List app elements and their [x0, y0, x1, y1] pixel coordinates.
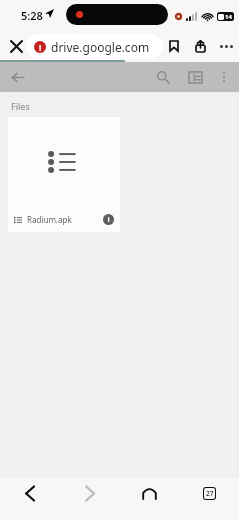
button[interactable]: Radium.apk: [8, 117, 120, 232]
staticText: Radium.apk: [27, 214, 72, 225]
button[interactable]: More options: [211, 64, 237, 90]
staticText: Files: [11, 100, 30, 112]
button[interactable]: More: [213, 33, 239, 59]
staticText: 5:28: [21, 8, 43, 23]
button[interactable]: Bookmarks: [161, 33, 187, 59]
button[interactable]: Back: [0, 478, 59, 508]
staticText: i: [107, 215, 110, 225]
button[interactable]: Close: [3, 33, 29, 59]
staticText: drive.google.com: [51, 39, 150, 55]
button[interactable]: Share: [187, 33, 213, 59]
button[interactable]: !: [26, 34, 163, 59]
button[interactable]: Forward: [59, 478, 119, 508]
staticText: 27: [206, 489, 214, 498]
staticText: 14: [225, 13, 232, 21]
staticText: !: [39, 42, 42, 53]
button[interactable]: Tabs: [179, 478, 239, 508]
button[interactable]: Home: [119, 478, 179, 508]
button[interactable]: File info: [103, 214, 114, 225]
button[interactable]: Back: [4, 64, 30, 90]
button[interactable]: Search: [150, 64, 176, 90]
button[interactable]: Switch view: [182, 64, 208, 90]
